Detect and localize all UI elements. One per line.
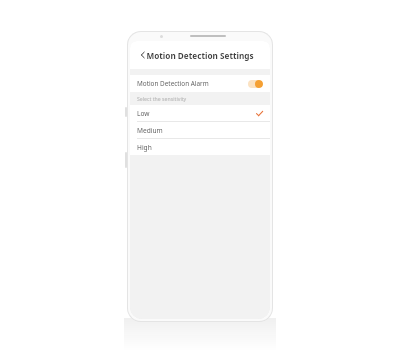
staticText: Select the sensitivity bbox=[137, 95, 187, 102]
staticText: Motion Detection Alarm bbox=[137, 79, 209, 88]
button[interactable]: High bbox=[130, 139, 270, 155]
button[interactable]: Motion Detection Alarm bbox=[130, 75, 270, 92]
staticText: Low bbox=[137, 109, 150, 118]
staticText: Medium bbox=[137, 126, 163, 135]
button[interactable]: Back bbox=[135, 47, 151, 63]
button[interactable]: Low bbox=[130, 105, 270, 121]
staticText: Motion Detection Settings bbox=[146, 50, 254, 61]
button[interactable]: Motion Detection Alarm toggle bbox=[248, 80, 263, 88]
staticText: High bbox=[137, 143, 152, 152]
button[interactable]: Medium bbox=[130, 122, 270, 138]
